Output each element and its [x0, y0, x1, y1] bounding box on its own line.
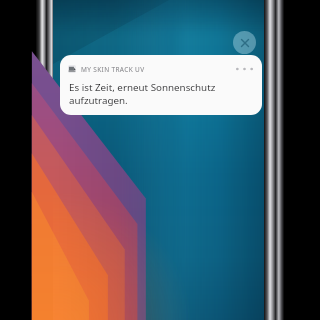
- button[interactable]: More options: [234, 63, 254, 75]
- staticText: Es ist Zeit, erneut Sonnenschutz aufzutr…: [69, 81, 216, 107]
- staticText: MY SKIN TRACK UV: [81, 65, 145, 74]
- button[interactable]: MY SKIN TRACK UV: [60, 55, 262, 115]
- button[interactable]: Close: [233, 31, 256, 54]
